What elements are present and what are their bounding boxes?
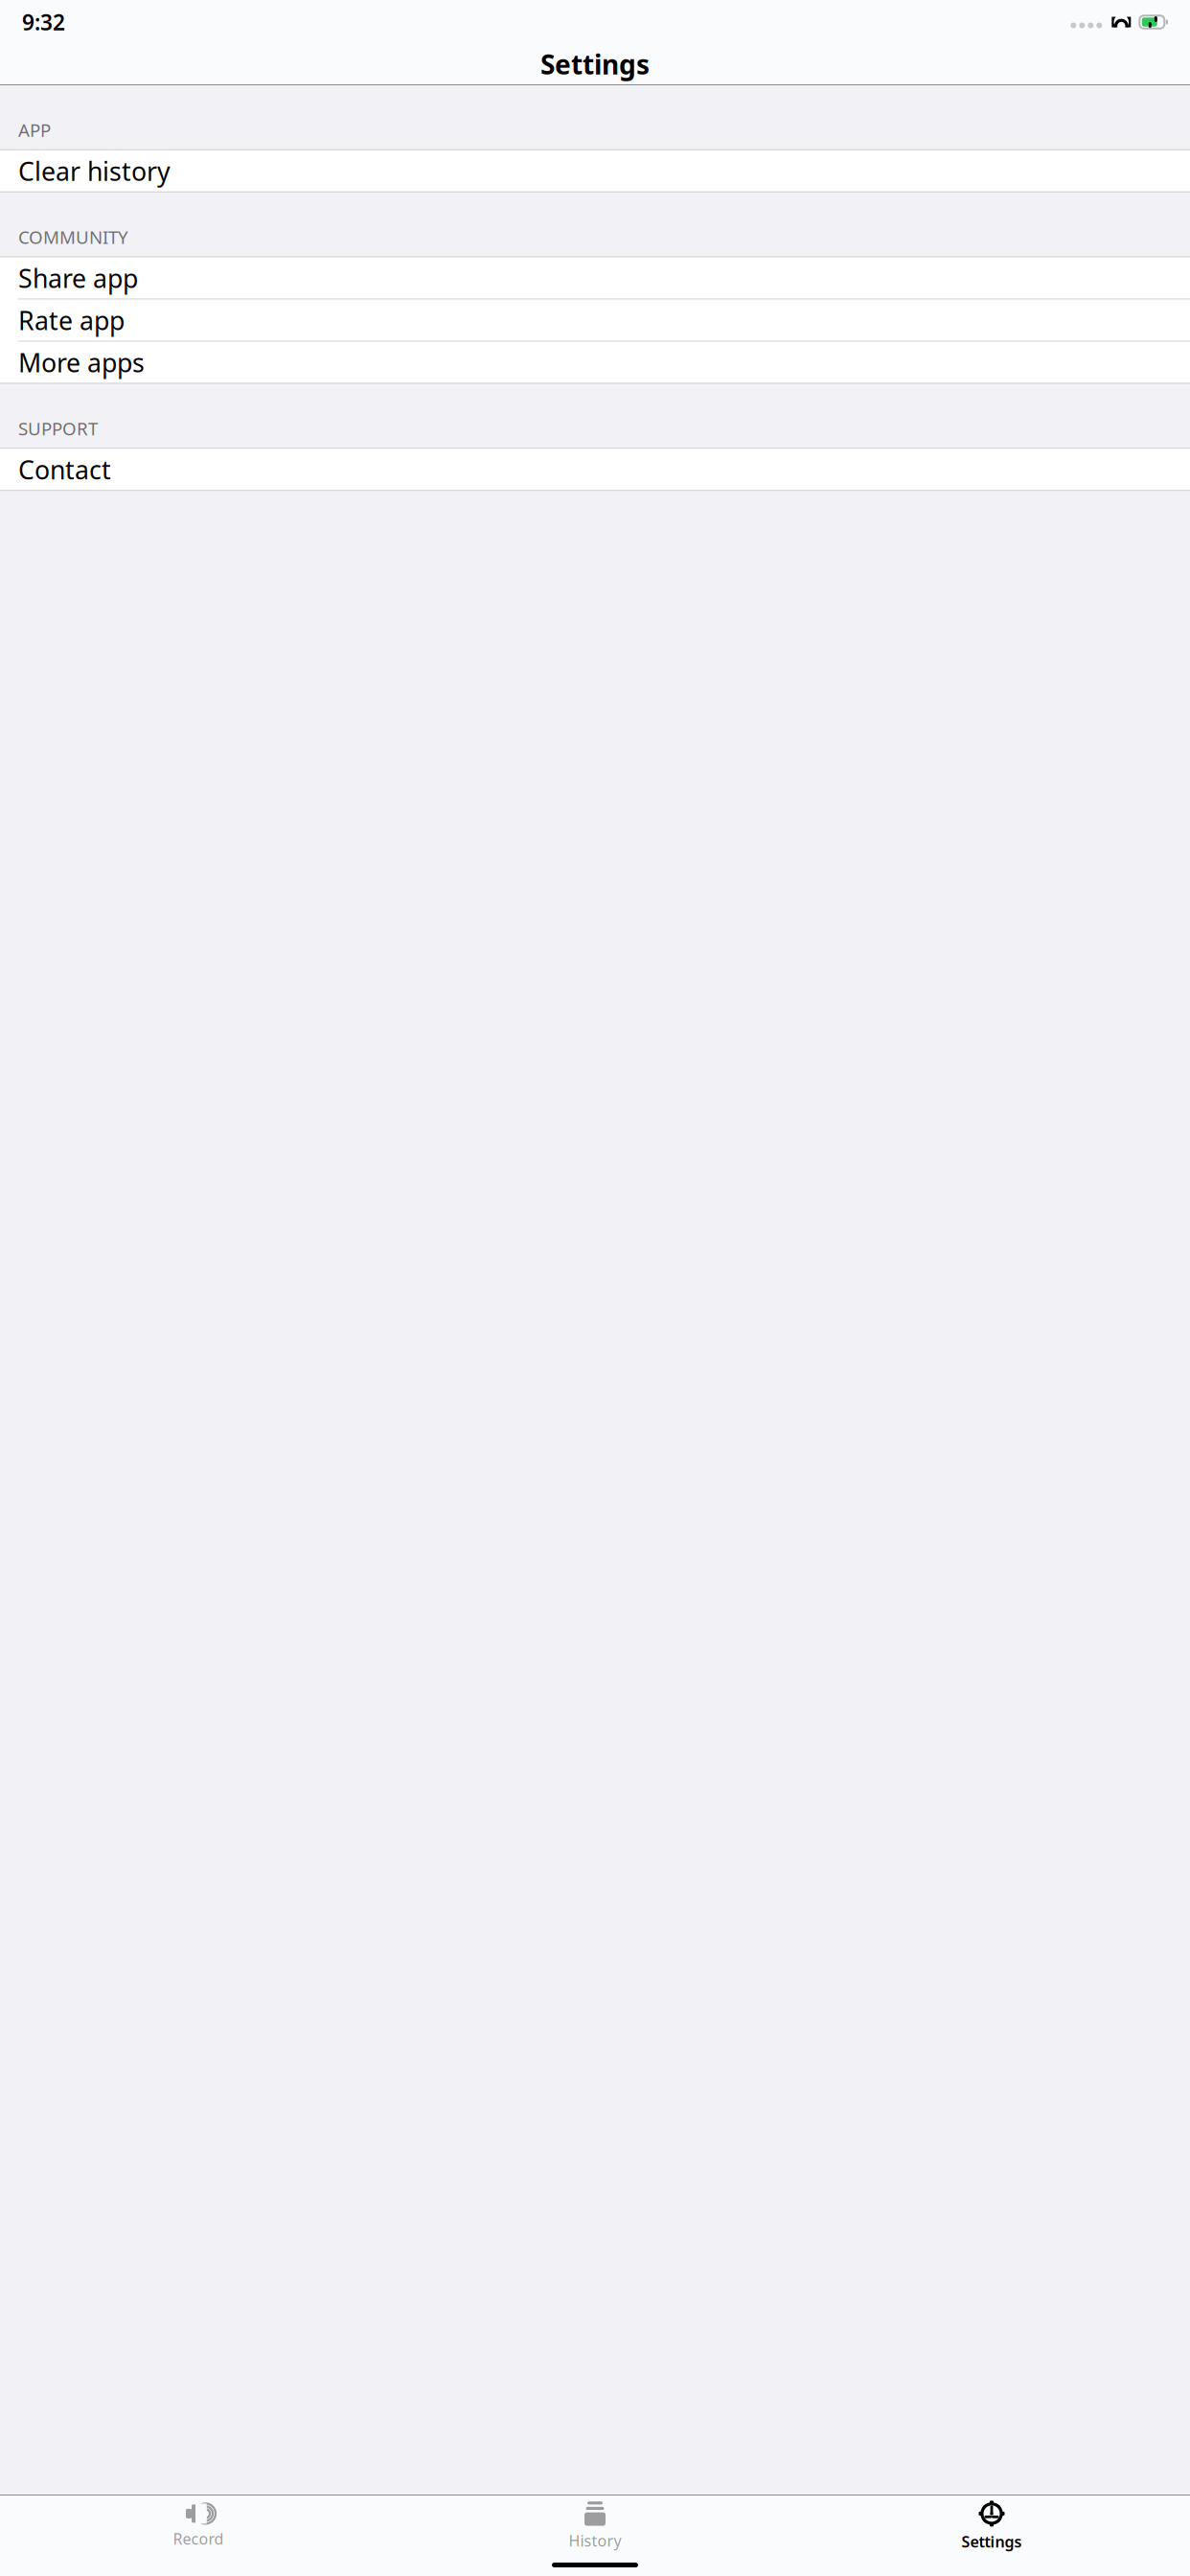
staticText: More apps [18, 345, 145, 379]
staticText: Share app [18, 261, 138, 295]
staticText: History [569, 2530, 621, 2551]
button[interactable]: Record [0, 2503, 397, 2549]
staticText: Record [173, 2528, 224, 2549]
button[interactable]: Settings [793, 2503, 1190, 2549]
staticText: Rate app [18, 303, 125, 337]
staticText: Settings [961, 2531, 1022, 2552]
staticText: APP [18, 118, 51, 142]
staticText: Clear history [18, 154, 171, 188]
staticText: COMMUNITY [18, 225, 128, 249]
staticText: Settings [540, 46, 650, 82]
button[interactable]: More apps [0, 342, 1190, 383]
button[interactable]: Share app [0, 257, 1190, 299]
staticText: Contact [18, 453, 111, 486]
button[interactable]: Contact [0, 449, 1190, 490]
staticText: 9:32 [22, 8, 65, 36]
staticText: SUPPORT [18, 416, 98, 440]
button[interactable]: Clear history [0, 150, 1190, 191]
button[interactable]: Rate app [0, 300, 1190, 341]
button[interactable]: History [397, 2503, 793, 2549]
